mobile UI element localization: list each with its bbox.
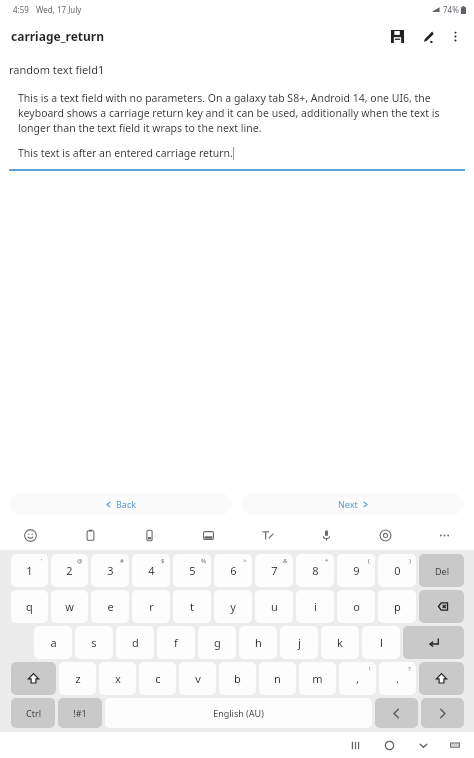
staticText: . [396, 671, 399, 686]
staticText: 74% [443, 4, 459, 15]
button[interactable]: 6 [214, 554, 252, 587]
button[interactable]: a [34, 626, 72, 659]
button[interactable]: Hide keyboard [406, 732, 440, 758]
staticText: 5 [189, 563, 196, 578]
button[interactable]: k [321, 626, 359, 659]
button[interactable]: p [378, 590, 416, 623]
button[interactable]: Cursor left [375, 698, 418, 728]
button[interactable]: v [179, 662, 216, 695]
button[interactable]: English (AU) [105, 698, 372, 728]
staticText: $ [161, 557, 165, 565]
button[interactable]: Clipboard [60, 520, 120, 550]
button[interactable]: Shift [11, 662, 56, 695]
button[interactable]: Voice input [297, 520, 356, 550]
button[interactable]: Back [10, 493, 232, 515]
button[interactable]: Recents [338, 732, 372, 758]
staticText: random text field1 [9, 62, 105, 77]
button[interactable]: 9 [337, 554, 375, 587]
button[interactable]: c [139, 662, 176, 695]
staticText: !#1 [73, 707, 87, 719]
button[interactable]: Save [382, 21, 412, 51]
staticText: 3 [107, 563, 114, 578]
staticText: ! [369, 665, 371, 673]
staticText: ( [368, 557, 370, 565]
button[interactable]: 8 [296, 554, 334, 587]
button[interactable]: 5 [173, 554, 211, 587]
button[interactable]: w [51, 590, 88, 623]
button[interactable]: Del [419, 554, 464, 587]
button[interactable]: 0 [378, 554, 416, 587]
staticText: m [312, 671, 323, 686]
button[interactable]: Split keyboard [179, 520, 238, 550]
staticText: j [298, 635, 301, 650]
staticText: u [271, 599, 278, 614]
staticText: % [201, 557, 206, 565]
button[interactable]: Cursor right [421, 698, 464, 728]
button[interactable]: f [157, 626, 195, 659]
button[interactable]: t [173, 590, 211, 623]
button[interactable]: l [362, 626, 400, 659]
button[interactable]: 1 [11, 554, 48, 587]
staticText: 4:59 [13, 4, 29, 15]
button[interactable]: Shift [419, 662, 464, 695]
staticText: 6 [230, 563, 237, 578]
button[interactable]: d [116, 626, 154, 659]
staticText: i [314, 599, 317, 614]
staticText: c [155, 671, 161, 686]
button[interactable]: r [132, 590, 170, 623]
button[interactable]: One-handed [120, 520, 179, 550]
button[interactable]: 3 [91, 554, 129, 587]
button[interactable]: Enter [403, 626, 464, 659]
button[interactable]: . [379, 662, 416, 695]
button[interactable]: 7 [255, 554, 293, 587]
button[interactable]: Edit [412, 21, 442, 51]
button[interactable]: This is a text field with no parameters.… [9, 91, 465, 171]
button[interactable]: , [339, 662, 376, 695]
button[interactable]: e [91, 590, 129, 623]
button[interactable]: 2 [51, 554, 88, 587]
staticText: Back [116, 498, 137, 510]
button[interactable]: More options [442, 23, 468, 49]
staticText: This is a text field with no parameters.… [18, 91, 461, 135]
button[interactable]: i [296, 590, 334, 623]
staticText: Del [435, 565, 449, 577]
staticText: ? [408, 665, 411, 673]
button[interactable]: j [280, 626, 318, 659]
staticText: x [115, 671, 121, 686]
staticText: a [50, 635, 57, 650]
button[interactable]: g [198, 626, 236, 659]
staticText: 9 [353, 563, 360, 578]
button[interactable]: More [415, 520, 474, 550]
button[interactable]: h [239, 626, 277, 659]
button[interactable]: Next [242, 493, 464, 515]
button[interactable]: x [99, 662, 136, 695]
staticText: # [120, 557, 124, 565]
button[interactable]: Backspace [419, 590, 464, 623]
staticText: 2 [66, 563, 73, 578]
button[interactable]: u [255, 590, 293, 623]
staticText: r [149, 599, 154, 614]
button[interactable]: q [11, 590, 48, 623]
button[interactable]: z [59, 662, 96, 695]
button[interactable]: b [219, 662, 256, 695]
staticText: b [234, 671, 241, 686]
button[interactable]: y [214, 590, 252, 623]
button[interactable]: s [75, 626, 113, 659]
button[interactable]: o [337, 590, 375, 623]
button[interactable]: 4 [132, 554, 170, 587]
staticText: k [337, 635, 343, 650]
staticText: o [353, 599, 360, 614]
staticText: Wed, 17 July [36, 4, 82, 15]
button[interactable]: Emoji [0, 520, 60, 550]
button[interactable]: !#1 [58, 698, 102, 728]
button[interactable]: Keyboard switch [440, 732, 470, 758]
button[interactable]: n [259, 662, 296, 695]
button[interactable]: Home [372, 732, 406, 758]
staticText: e [107, 599, 114, 614]
staticText: q [26, 599, 33, 614]
button[interactable]: Settings [356, 520, 415, 550]
button[interactable]: m [299, 662, 336, 695]
staticText: t [190, 599, 194, 614]
button[interactable]: Ctrl [11, 698, 55, 728]
button[interactable]: Handwriting [238, 520, 297, 550]
